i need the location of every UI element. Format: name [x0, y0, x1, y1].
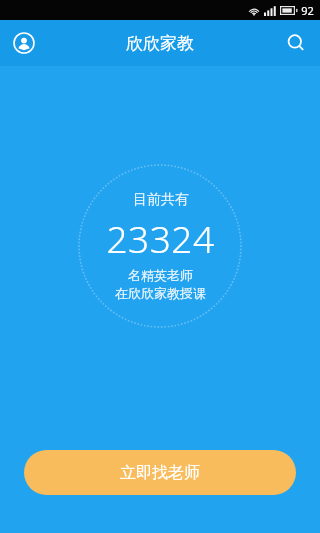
staticText: 92 — [301, 3, 314, 18]
staticText: 立即找老师 — [120, 463, 200, 483]
staticText: 目前共有 — [133, 191, 189, 209]
button[interactable]: Profile — [8, 27, 40, 59]
button[interactable]: Search — [280, 27, 312, 59]
staticText: 在欣欣家教授课 — [115, 285, 206, 301]
staticText: 23324 — [106, 213, 215, 263]
staticText: 名精英老师 — [128, 267, 193, 283]
staticText: 欣欣家教 — [126, 33, 194, 54]
button[interactable]: 立即找老师 — [24, 450, 296, 495]
